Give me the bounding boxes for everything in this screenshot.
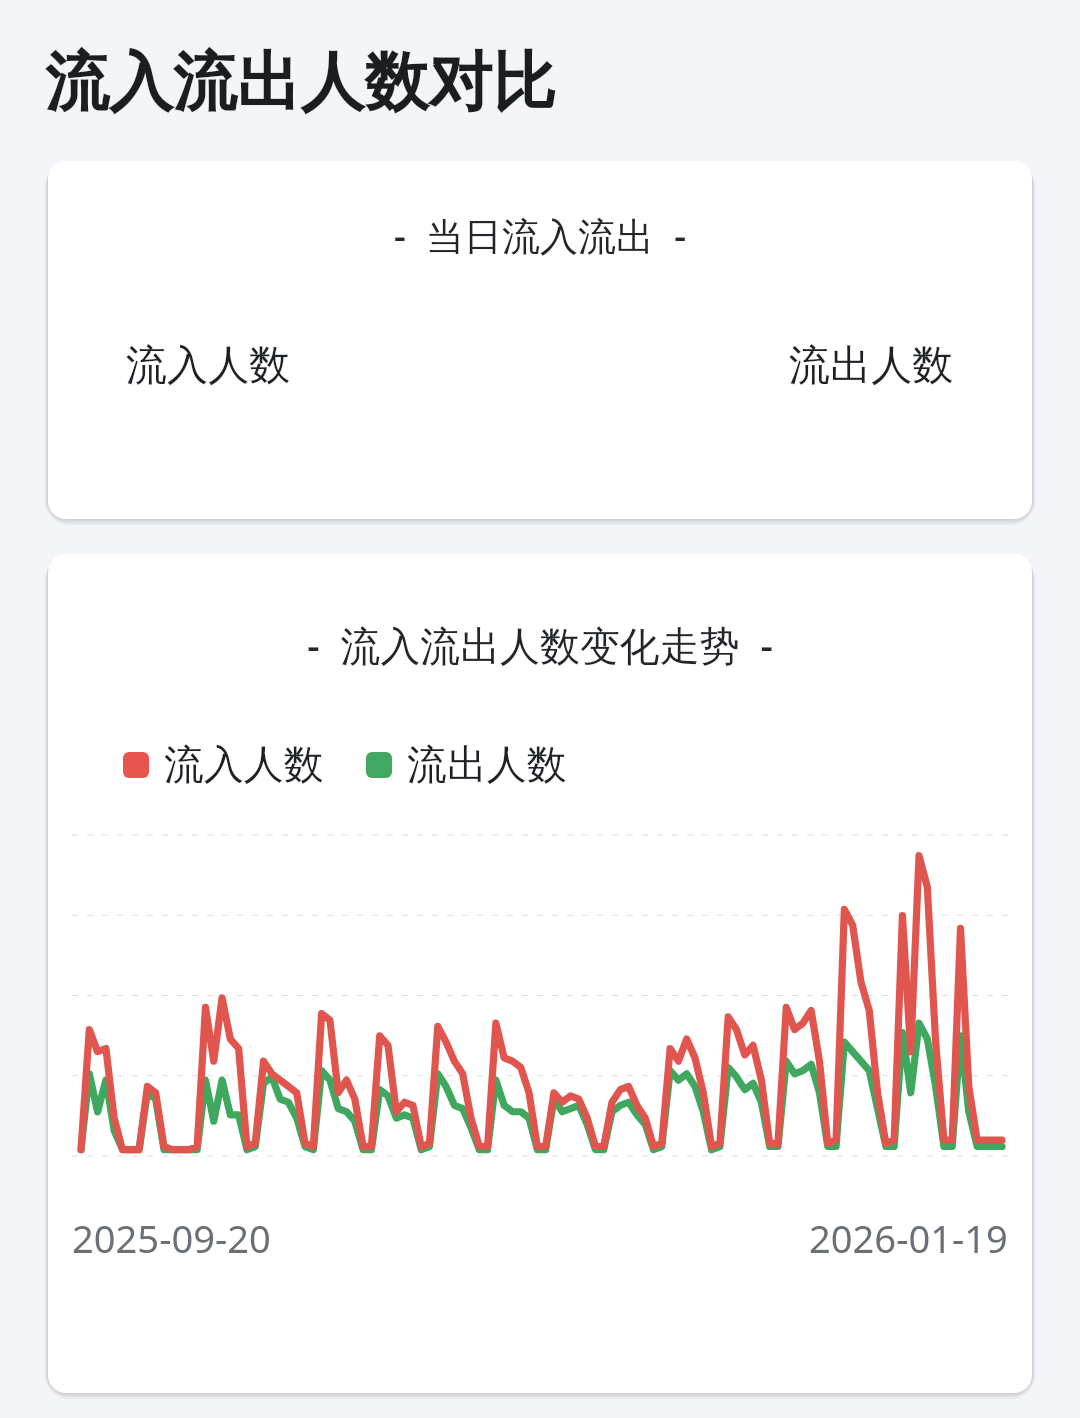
button[interactable]: 流入人数 (126, 339, 291, 391)
staticText: 流入流出人数对比 (45, 42, 557, 122)
button[interactable]: Card (48, 161, 1032, 519)
button[interactable]: Card (48, 554, 1032, 1393)
staticText: 2025-09-20 (72, 1212, 271, 1264)
button[interactable]: 流出人数 (366, 740, 567, 790)
staticText: - 当日流入流出 - (48, 209, 1032, 261)
staticText: 流出人数 (407, 740, 567, 790)
staticText: 流入人数 (164, 740, 324, 790)
staticText: - 流入流出人数变化走势 - (48, 617, 1032, 671)
button[interactable]: 流出人数 (789, 339, 954, 391)
button[interactable]: 流入人数 (123, 740, 324, 790)
staticText: 2026-01-19 (809, 1212, 1008, 1264)
